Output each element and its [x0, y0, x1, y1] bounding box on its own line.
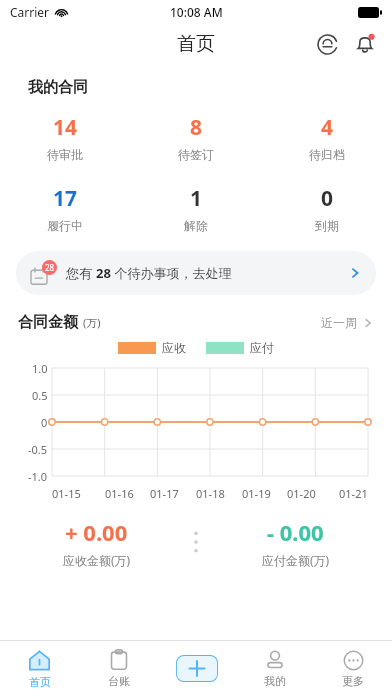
staticText: 应付金额(万) [262, 552, 330, 568]
staticText: 28 [45, 262, 55, 273]
staticText: 个待办事项，去处理 [111, 264, 232, 282]
staticText: 台账 [108, 674, 130, 688]
button[interactable]: 4 [309, 111, 345, 164]
staticText: 01-17 [150, 486, 179, 501]
staticText: 应收金额(万) [63, 552, 131, 568]
staticText: 首页 [177, 32, 215, 56]
staticText: 1 [190, 184, 203, 213]
staticText: 8 [190, 113, 203, 142]
staticText: 待审批 [47, 147, 83, 162]
button[interactable]: 台账 [79, 641, 158, 696]
button[interactable]: 8 [178, 111, 214, 164]
button[interactable]: Notifications [350, 29, 380, 59]
button[interactable]: 0 [315, 182, 339, 235]
staticText: (万) [83, 315, 101, 330]
staticText: 0.5 [32, 388, 48, 402]
button[interactable]: 1 [184, 182, 208, 235]
staticText: 合同金额 [18, 313, 78, 332]
staticText: 01-15 [52, 486, 81, 501]
button[interactable]: - 0.00 [199, 517, 392, 568]
staticText: 我的 [264, 674, 286, 688]
staticText: 首页 [29, 675, 51, 689]
staticText: 应收 [162, 340, 186, 355]
button[interactable]: Customer service [312, 29, 342, 59]
button[interactable]: + 0.00 [0, 517, 193, 568]
staticText: 14 [53, 113, 78, 142]
staticText: 4 [321, 113, 334, 142]
button[interactable]: 更多 [314, 641, 392, 696]
staticText: 01-19 [242, 486, 271, 501]
staticText: 01-21 [339, 486, 368, 501]
button[interactable]: 28 [16, 251, 376, 295]
button[interactable]: Add [176, 655, 218, 682]
staticText: 10:08 AM [170, 4, 223, 20]
staticText: 0 [321, 184, 334, 213]
staticText: 待归档 [309, 147, 345, 162]
staticText: 我的合同 [28, 78, 88, 97]
button[interactable]: 近一周 [321, 315, 374, 330]
button[interactable]: 首页 [0, 641, 79, 696]
staticText: Carrier [10, 4, 50, 20]
staticText: 您有 [66, 264, 96, 282]
button[interactable]: 我的 [236, 641, 314, 696]
staticText: - 0.00 [267, 517, 324, 547]
staticText: 01-18 [196, 486, 225, 501]
staticText: 01-20 [287, 486, 316, 501]
staticText: -1.0 [28, 469, 48, 483]
staticText: 应付 [250, 340, 274, 355]
staticText: 到期 [315, 218, 339, 233]
staticText: 更多 [342, 674, 364, 688]
button[interactable]: 17 [47, 182, 83, 235]
staticText: 01-16 [105, 486, 134, 501]
staticText: 近一周 [321, 315, 357, 330]
staticText: 履行中 [47, 218, 83, 233]
staticText: -0.5 [28, 442, 48, 456]
staticText: 待签订 [178, 147, 214, 162]
staticText: 1.0 [32, 361, 48, 375]
button[interactable]: 14 [47, 111, 83, 164]
staticText: 0 [41, 415, 48, 429]
staticText: 28 [96, 264, 111, 282]
staticText: + 0.00 [65, 517, 128, 547]
staticText: 解除 [184, 218, 208, 233]
staticText: 17 [53, 184, 78, 213]
